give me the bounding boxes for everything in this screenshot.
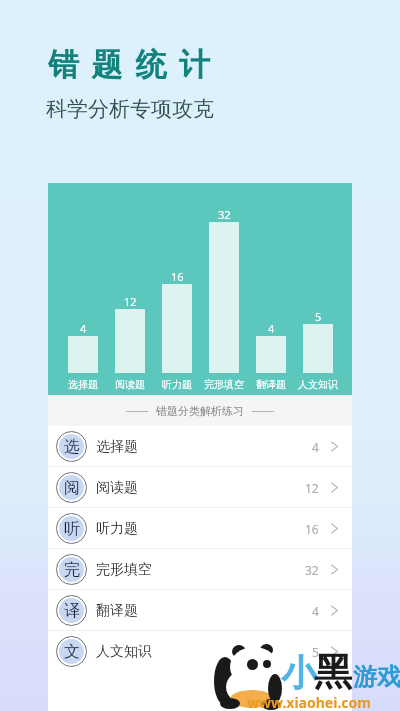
staticText: 阅 bbox=[64, 478, 80, 498]
staticText: 16 bbox=[305, 521, 319, 537]
staticText: 选 bbox=[64, 437, 80, 457]
staticText: 12 bbox=[124, 294, 137, 309]
staticText: 听 bbox=[64, 519, 80, 539]
staticText: 阅读题 bbox=[96, 479, 138, 497]
staticText: 人文知识 bbox=[96, 643, 152, 661]
button[interactable]: 译 bbox=[48, 590, 352, 631]
staticText: 12 bbox=[305, 480, 319, 496]
staticText: 阅读题 bbox=[115, 378, 145, 391]
staticText: 4 bbox=[312, 439, 319, 455]
staticText: 完形填空 bbox=[96, 561, 152, 579]
staticText: 16 bbox=[171, 269, 184, 284]
button[interactable]: 阅 bbox=[48, 467, 352, 508]
staticText: 选择题 bbox=[68, 378, 98, 391]
staticText: 黑 bbox=[314, 648, 352, 696]
staticText: 5 bbox=[315, 309, 322, 324]
staticText: 错题分类解析练习 bbox=[156, 404, 244, 418]
staticText: www.xiaohei.com bbox=[247, 693, 371, 711]
staticText: 4 bbox=[80, 321, 87, 336]
staticText: 科学分析专项攻克 bbox=[46, 96, 214, 122]
staticText: 4 bbox=[268, 321, 275, 336]
staticText: 完形填空 bbox=[204, 378, 244, 391]
staticText: 5 bbox=[312, 644, 319, 660]
button[interactable]: 文 bbox=[48, 631, 352, 672]
staticText: 选择题 bbox=[96, 438, 138, 456]
staticText: 文 bbox=[64, 642, 80, 662]
staticText: 32 bbox=[305, 562, 319, 578]
staticText: 完 bbox=[64, 560, 80, 580]
staticText: 小 bbox=[281, 650, 317, 695]
staticText: 人文知识 bbox=[298, 378, 338, 391]
button[interactable]: 选 bbox=[48, 426, 352, 467]
staticText: 翻译题 bbox=[96, 602, 138, 620]
staticText: 游戏 bbox=[353, 662, 400, 692]
staticText: 4 bbox=[312, 603, 319, 619]
button[interactable]: 完 bbox=[48, 549, 352, 590]
button[interactable]: 听 bbox=[48, 508, 352, 549]
staticText: 听力题 bbox=[162, 378, 192, 391]
staticText: 听力题 bbox=[96, 520, 138, 538]
staticText: 译 bbox=[64, 601, 80, 621]
staticText: 错题统计 bbox=[48, 45, 223, 84]
staticText: 32 bbox=[218, 207, 231, 222]
staticText: 翻译题 bbox=[256, 378, 286, 391]
